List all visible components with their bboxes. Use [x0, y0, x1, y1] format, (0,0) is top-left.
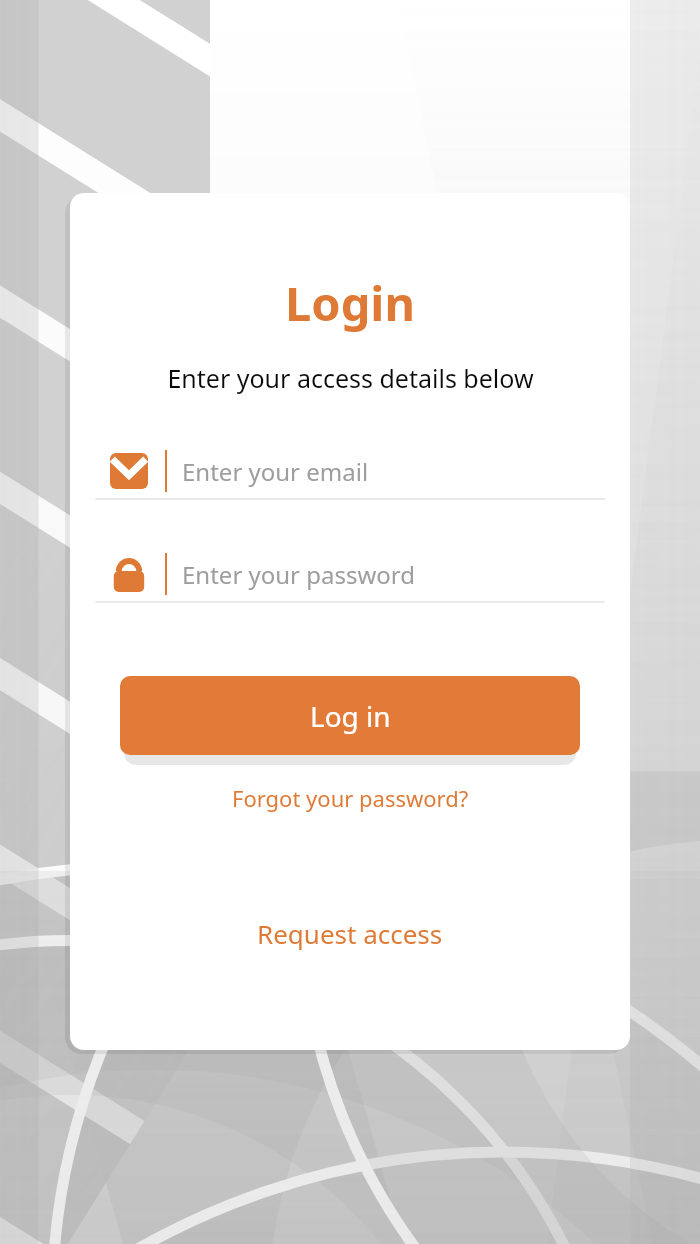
staticText: Login	[285, 271, 415, 335]
staticText: Enter your access details below	[167, 361, 534, 395]
staticText: Forgot your password?	[232, 783, 469, 813]
button[interactable]: Password input field	[95, 547, 605, 603]
staticText: Request access	[257, 916, 443, 951]
button[interactable]: Log in	[120, 676, 580, 755]
button[interactable]: Request access	[239, 910, 461, 957]
staticText: Enter your password	[182, 558, 416, 591]
staticText: Log in	[310, 697, 391, 735]
button[interactable]: Email input field	[95, 444, 605, 500]
staticText: Enter your email	[182, 455, 369, 488]
button[interactable]: Forgot your password?	[214, 777, 487, 819]
